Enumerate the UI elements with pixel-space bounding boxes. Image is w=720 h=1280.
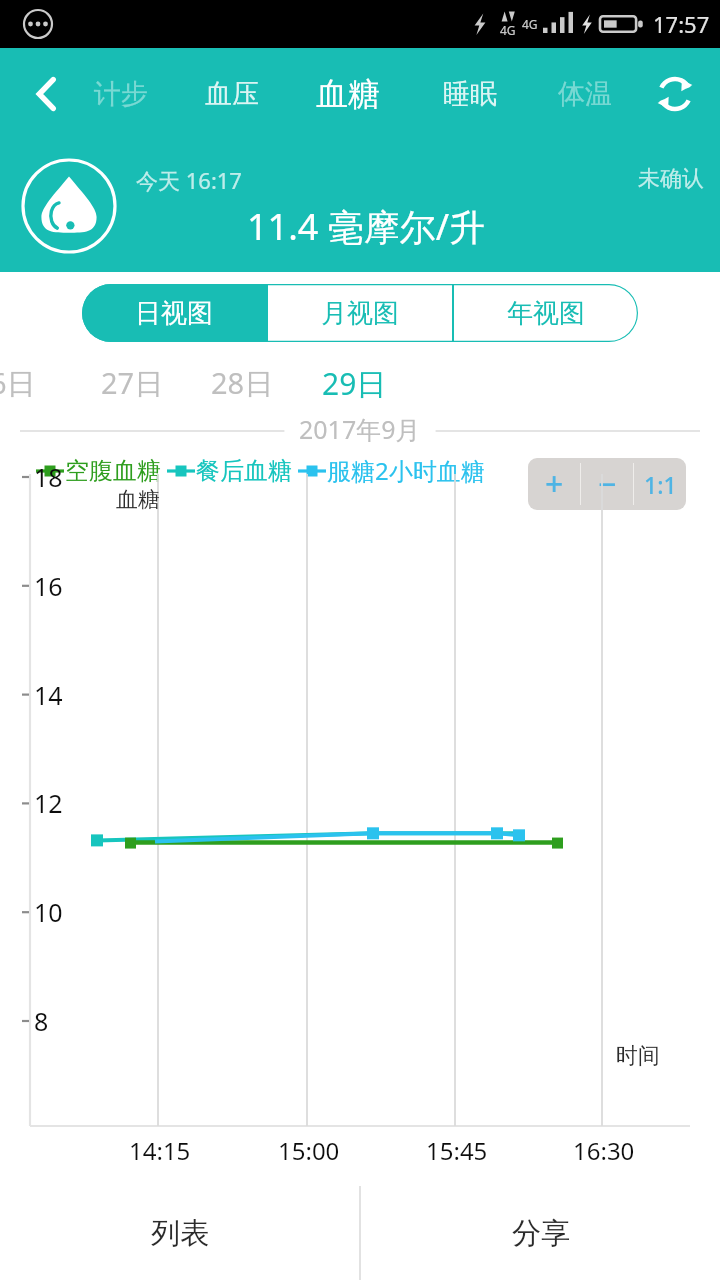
staticText: − [598,462,617,506]
button[interactable]: 血压 [205,77,259,111]
button[interactable]: 体温 [558,77,612,111]
staticText: 11.4 毫摩尔/升 [247,202,486,251]
staticText: 年视图 [507,297,585,330]
staticText: 血压 [205,77,259,111]
button[interactable]: 日视图 [82,284,266,342]
button[interactable]: Zoom in [528,458,580,510]
button[interactable]: 今天 16:17 [0,140,720,272]
button[interactable]: 分享 [361,1186,720,1280]
button[interactable]: Zoom out [581,458,633,510]
staticText: 29日 [322,363,387,404]
staticText: 分享 [512,1215,570,1252]
staticText: 月视图 [321,297,399,330]
staticText: 16 [34,569,63,603]
button[interactable]: 列表 [0,1186,359,1280]
staticText: 未确认 [638,165,704,193]
staticText: 今天 16:17 [136,165,242,195]
staticText: 睡眠 [443,77,497,111]
staticText: 12 [34,786,63,820]
button[interactable]: 月视图 [268,284,452,342]
button[interactable]: 年视图 [454,284,638,342]
button[interactable]: Reset zoom [634,458,686,510]
button[interactable]: 计步 [94,77,148,111]
staticText: 日视图 [135,297,213,330]
staticText: 8 [34,1004,49,1038]
button[interactable]: 6日 [0,363,36,403]
staticText: 14 [34,678,63,712]
staticText: 16:30 [573,1134,635,1167]
staticText: 空腹血糖 [65,456,161,486]
button[interactable]: 血糖 [316,74,380,114]
staticText: 6日 [0,363,36,403]
staticText: 餐后血糖 [196,456,292,486]
staticText: 27日 [101,363,164,403]
staticText: 血糖 [316,74,380,114]
button[interactable]: 28日 [211,363,274,403]
staticText: 10 [34,895,63,929]
staticText: 2017年9月 [299,412,421,446]
button[interactable]: 27日 [101,363,164,403]
staticText: 18 [34,460,63,494]
staticText: 血糖 [116,486,160,514]
button[interactable]: 睡眠 [443,77,497,111]
staticText: 服糖2小时血糖 [327,454,485,487]
staticText: 列表 [151,1215,209,1252]
staticText: 时间 [616,1042,660,1070]
staticText: 14:15 [129,1134,191,1167]
staticText: 15:45 [426,1134,488,1167]
staticText: 4G [522,16,538,32]
staticText: 体温 [558,77,612,111]
staticText: 计步 [94,77,148,111]
staticText: 1:1 [644,469,677,500]
staticText: 15:00 [278,1134,340,1167]
button[interactable]: 29日 [322,363,387,404]
staticText: 28日 [211,363,274,403]
button[interactable]: Back [18,66,74,122]
staticText: 4G [500,22,516,38]
button[interactable]: Refresh [646,65,704,123]
staticText: + [545,462,564,506]
staticText: 17:57 [653,9,710,39]
